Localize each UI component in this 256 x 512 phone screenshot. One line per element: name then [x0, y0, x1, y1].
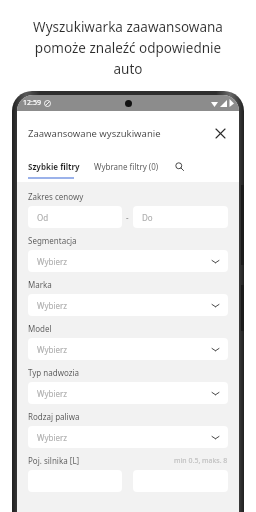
staticText: Zakres cenowy: [28, 191, 84, 202]
button[interactable]: Wybierz: [28, 426, 228, 448]
button[interactable]: Od: [28, 206, 122, 228]
staticText: Zaawansowane wyszukiwanie: [28, 127, 161, 140]
staticText: Marka: [28, 279, 52, 290]
button[interactable]: Wybierz: [28, 294, 228, 316]
staticText: -: [126, 212, 129, 223]
staticText: Wybierz: [37, 388, 68, 399]
staticText: 12:59: [23, 98, 41, 108]
button[interactable]: Wybierz: [28, 382, 228, 404]
staticText: Wybierz: [37, 344, 68, 355]
staticText: Wybierz: [37, 256, 68, 267]
staticText: Wybierz: [37, 432, 68, 443]
button[interactable]: Wybrane filtry (0): [94, 161, 159, 172]
staticText: Od: [37, 212, 49, 223]
button[interactable]: Szybkie filtry: [28, 161, 80, 172]
staticText: Wybierz: [37, 300, 68, 311]
staticText: Do: [142, 212, 153, 223]
button[interactable]: Wybierz: [28, 250, 228, 272]
staticText: Poj. silnika [L]: [28, 455, 80, 466]
staticText: Wybrane filtry (0): [94, 161, 159, 172]
button[interactable]: Szukaj: [172, 159, 186, 173]
staticText: min 0.5, maks. 8: [174, 456, 228, 466]
button[interactable]: Zamknij: [209, 122, 231, 144]
button[interactable]: Wybierz: [28, 338, 228, 360]
staticText: Rodzaj paliwa: [28, 411, 80, 422]
button[interactable]: Do: [133, 206, 228, 228]
staticText: Typ nadwozia: [28, 367, 80, 378]
staticText: Model: [28, 323, 52, 334]
staticText: Wyszukiwarka zaawansowana pomoże znaleźć…: [14, 18, 242, 78]
staticText: Szybkie filtry: [28, 161, 80, 172]
staticText: Segmentacja: [28, 235, 77, 246]
